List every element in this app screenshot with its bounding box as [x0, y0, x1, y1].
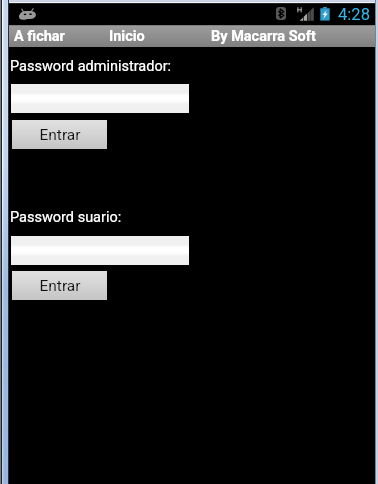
button[interactable]: Entrar: [12, 120, 107, 149]
button[interactable]: Password administrador:: [10, 58, 172, 75]
button[interactable]: Inicio: [109, 28, 145, 45]
button[interactable]: Entrar: [12, 271, 107, 300]
staticText: Entrar: [39, 277, 81, 295]
staticText: By Macarra Soft: [211, 28, 316, 45]
staticText: Entrar: [39, 126, 81, 144]
button[interactable]: By Macarra Soft: [211, 28, 316, 45]
other: Notification: [19, 7, 37, 20]
button[interactable]: Password input: [11, 236, 189, 265]
staticText: Inicio: [109, 28, 145, 45]
staticText: 4:28: [338, 5, 370, 24]
button[interactable]: A fichar: [14, 28, 65, 45]
staticText: A fichar: [14, 28, 65, 45]
button[interactable]: Password suario:: [10, 209, 122, 226]
button[interactable]: Password input: [11, 84, 189, 113]
